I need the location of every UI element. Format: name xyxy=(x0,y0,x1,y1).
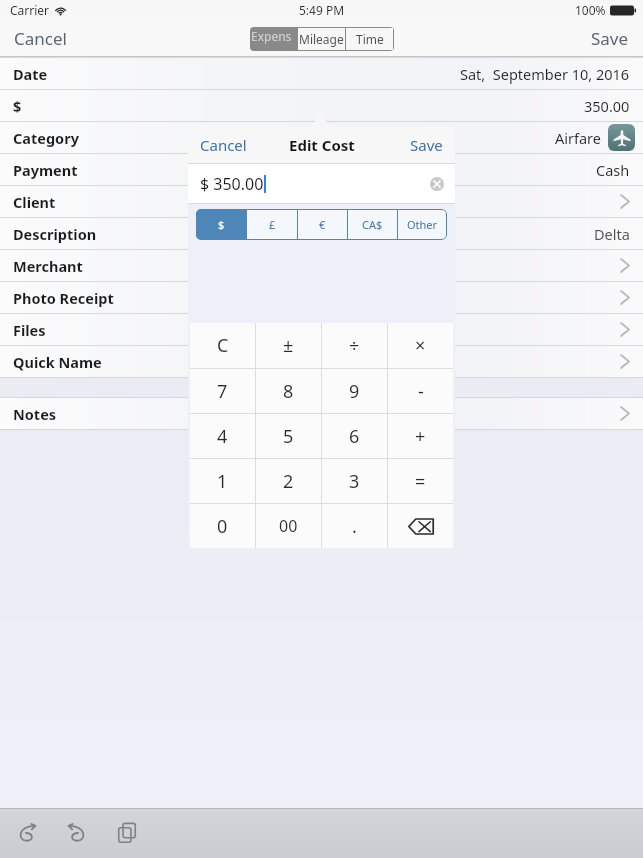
button[interactable]: 0 xyxy=(190,504,255,548)
staticText: 4 xyxy=(217,424,228,449)
button[interactable]: 7 xyxy=(190,369,255,413)
button[interactable]: Cancel xyxy=(188,129,259,161)
staticText: Edit Cost xyxy=(289,135,355,155)
button[interactable]: ÷ xyxy=(322,323,387,368)
button[interactable]: ± xyxy=(256,323,321,368)
button[interactable]: 4 xyxy=(190,414,255,458)
staticText: + xyxy=(415,424,426,449)
staticText: Save xyxy=(410,135,443,155)
staticText: 8 xyxy=(283,379,294,404)
button[interactable]: Payment xyxy=(0,154,643,186)
staticText: - xyxy=(418,379,424,404)
staticText: = xyxy=(415,469,426,494)
button[interactable]: 6 xyxy=(322,414,387,458)
staticText: Description xyxy=(13,224,97,244)
button[interactable]: 9 xyxy=(322,369,387,413)
staticText: 6 xyxy=(349,424,360,449)
staticText: 0 xyxy=(217,514,228,539)
staticText: Photo Receipt xyxy=(13,288,114,308)
button[interactable]: € xyxy=(298,209,347,240)
staticText: € xyxy=(319,217,326,232)
button[interactable]: $ xyxy=(196,209,246,240)
button[interactable]: Time xyxy=(346,28,393,50)
staticText: $ 350.00 xyxy=(200,173,264,195)
button[interactable]: Photo Receipt xyxy=(0,282,643,314)
button[interactable]: Notes xyxy=(0,398,643,430)
staticText: Time xyxy=(356,31,384,47)
button[interactable]: + xyxy=(388,414,453,458)
button[interactable]: 3 xyxy=(322,459,387,503)
staticText: 100% xyxy=(575,2,606,18)
button[interactable]: C xyxy=(190,323,255,368)
staticText: 350.00 xyxy=(584,96,630,116)
staticText: 5:49 PM xyxy=(299,2,345,18)
button[interactable]: Merchant xyxy=(0,250,643,282)
staticText: C xyxy=(217,333,229,358)
staticText: Delta xyxy=(594,224,630,244)
staticText: Expense xyxy=(251,28,297,50)
button[interactable]: 00 xyxy=(256,504,321,548)
staticText: × xyxy=(415,333,426,358)
staticText: 1 xyxy=(217,469,228,494)
button[interactable]: 1 xyxy=(190,459,255,503)
staticText: Save xyxy=(591,27,629,50)
button[interactable]: - xyxy=(388,369,453,413)
staticText: Other xyxy=(407,217,438,232)
staticText: £ xyxy=(269,217,276,232)
button[interactable]: Airfare category xyxy=(608,124,635,151)
staticText: Client xyxy=(13,192,56,212)
staticText: Sat, September 10, 2016 xyxy=(460,64,630,84)
button[interactable]: Files xyxy=(0,314,643,346)
button[interactable]: Cancel xyxy=(0,21,81,56)
staticText: Cancel xyxy=(14,27,67,50)
button[interactable]: = xyxy=(388,459,453,503)
staticText: ± xyxy=(283,333,294,358)
staticText: ÷ xyxy=(349,333,360,358)
button[interactable]: Save xyxy=(577,21,643,56)
staticText: 5 xyxy=(283,424,294,449)
staticText: CA$ xyxy=(362,217,383,232)
button[interactable]: Mileage xyxy=(298,28,345,50)
button[interactable]: Save xyxy=(398,129,455,161)
staticText: Mileage xyxy=(299,31,344,47)
staticText: 9 xyxy=(349,379,360,404)
staticText: 3 xyxy=(349,469,360,494)
button[interactable]: Other xyxy=(398,209,447,240)
button[interactable]: . xyxy=(322,504,387,548)
button[interactable]: Quick Name xyxy=(0,346,643,378)
staticText: 7 xyxy=(217,379,228,404)
staticText: Quick Name xyxy=(13,352,102,372)
staticText: Category xyxy=(13,128,79,148)
staticText: Cash xyxy=(596,160,630,180)
staticText: 2 xyxy=(283,469,294,494)
staticText: Airfare xyxy=(555,128,601,148)
staticText: Date xyxy=(13,64,48,84)
button[interactable]: Redo xyxy=(58,814,96,852)
button[interactable]: Category xyxy=(0,122,643,154)
staticText: $ xyxy=(13,96,22,116)
button[interactable]: CA$ xyxy=(348,209,397,240)
button[interactable]: Backspace xyxy=(388,504,453,548)
staticText: Notes xyxy=(13,404,57,424)
button[interactable]: £ xyxy=(247,209,297,240)
button[interactable]: Date xyxy=(0,58,643,90)
staticText: . xyxy=(352,514,357,539)
staticText: $ xyxy=(218,217,225,232)
button[interactable]: $ xyxy=(0,90,643,122)
staticText: 00 xyxy=(279,515,298,537)
button[interactable]: 8 xyxy=(256,369,321,413)
staticText: Files xyxy=(13,320,46,340)
button[interactable]: Undo xyxy=(8,814,46,852)
button[interactable]: Expense xyxy=(251,28,297,50)
staticText: Merchant xyxy=(13,256,83,276)
button[interactable]: 2 xyxy=(256,459,321,503)
button[interactable]: Client xyxy=(0,186,643,218)
staticText: Payment xyxy=(13,160,78,180)
button[interactable]: 5 xyxy=(256,414,321,458)
staticText: Cancel xyxy=(200,135,247,155)
button[interactable]: × xyxy=(388,323,453,368)
button[interactable]: Copy xyxy=(108,814,146,852)
button[interactable]: Description xyxy=(0,218,643,250)
button[interactable]: Clear text xyxy=(430,177,444,191)
staticText: Carrier xyxy=(10,2,50,18)
